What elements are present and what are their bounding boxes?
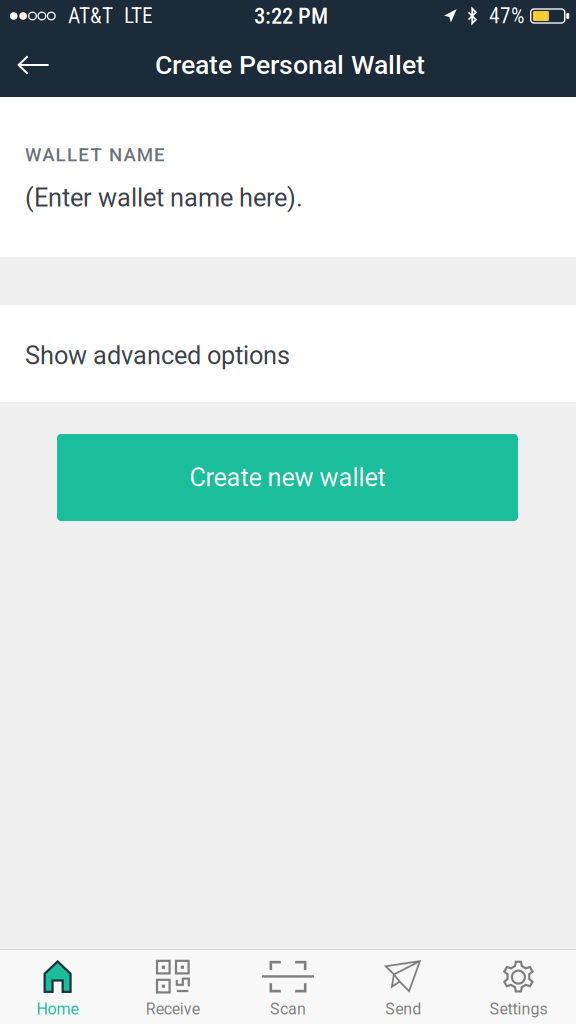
button[interactable]: Show advanced options	[0, 305, 576, 402]
button[interactable]: Scan	[230, 950, 346, 1024]
staticText: Create new wallet	[189, 463, 385, 492]
button[interactable]: Send	[346, 950, 461, 1024]
staticText: Settings	[489, 1000, 547, 1018]
staticText: LTE	[124, 3, 153, 28]
staticText: (Enter wallet name here).	[25, 183, 303, 213]
button[interactable]: Settings	[461, 950, 576, 1024]
staticText: WALLET NAME	[25, 144, 165, 166]
staticText: AT&T	[68, 3, 113, 28]
staticText: Receive	[146, 1000, 200, 1018]
staticText: Send	[385, 1000, 421, 1018]
staticText: Create Personal Wallet	[155, 49, 425, 81]
staticText: Home	[37, 1000, 79, 1018]
button[interactable]: Home	[0, 950, 115, 1024]
staticText: 47%	[489, 3, 525, 28]
staticText: Show advanced options	[25, 341, 290, 370]
staticText: Scan	[270, 1000, 306, 1018]
staticText: 3:22 PM	[254, 3, 328, 29]
button[interactable]: Receive	[115, 950, 230, 1024]
button[interactable]: Create new wallet	[57, 434, 518, 521]
button[interactable]: Back	[0, 43, 67, 91]
